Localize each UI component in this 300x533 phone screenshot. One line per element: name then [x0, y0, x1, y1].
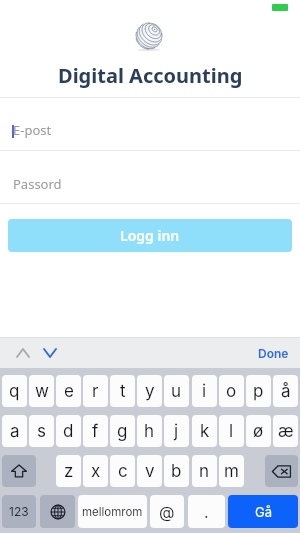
button[interactable]: . [188, 495, 225, 528]
staticText: i [202, 381, 207, 402]
staticText: E-post [13, 121, 52, 139]
staticText: m [224, 461, 239, 482]
button[interactable]: Done [253, 342, 293, 365]
button[interactable]: h [137, 415, 162, 447]
button[interactable]: ø [246, 415, 271, 447]
staticText: l [229, 421, 234, 442]
button[interactable]: u [164, 375, 189, 407]
staticText: x [91, 461, 101, 482]
staticText: t [120, 381, 126, 402]
button[interactable]: y [137, 375, 162, 407]
staticText: f [92, 421, 99, 442]
button[interactable]: q [2, 375, 27, 407]
button[interactable]: b [164, 455, 189, 487]
staticText: ø [253, 421, 264, 442]
button[interactable]: Previous field [10, 342, 36, 364]
button[interactable]: Passord [0, 151, 300, 203]
staticText: y [145, 381, 155, 402]
button[interactable]: l [219, 415, 244, 447]
staticText: @ [159, 502, 175, 521]
staticText: s [37, 421, 46, 442]
button[interactable]: z [56, 455, 81, 487]
button[interactable]: x [83, 455, 108, 487]
button[interactable]: j [164, 415, 189, 447]
staticText: æ [278, 421, 294, 442]
button[interactable]: æ [273, 415, 298, 447]
button[interactable]: e [56, 375, 81, 407]
button[interactable]: w [29, 375, 54, 407]
staticText: e [64, 381, 74, 402]
staticText: 123 [9, 504, 29, 519]
staticText: q [9, 381, 20, 402]
staticText: . [204, 502, 209, 521]
button[interactable]: @ [150, 495, 184, 528]
button[interactable]: Gå [228, 495, 298, 528]
button[interactable]: f [83, 415, 108, 447]
staticText: å [281, 381, 291, 402]
staticText: c [118, 461, 128, 482]
button[interactable]: s [29, 415, 54, 447]
button[interactable]: a [2, 415, 27, 447]
button[interactable]: r [83, 375, 108, 407]
button[interactable]: n [192, 455, 217, 487]
button[interactable]: c [110, 455, 135, 487]
staticText: r [92, 381, 99, 402]
button[interactable]: k [192, 415, 217, 447]
button[interactable]: d [56, 415, 81, 447]
button[interactable]: Switch keyboard [40, 495, 75, 528]
button[interactable]: p [246, 375, 271, 407]
button[interactable]: g [110, 415, 135, 447]
button[interactable]: m [219, 455, 244, 487]
staticText: u [171, 381, 182, 402]
staticText: k [200, 421, 210, 442]
staticText: z [64, 461, 74, 482]
button[interactable]: Next field [36, 342, 63, 364]
button[interactable]: mellomrom [78, 495, 147, 528]
staticText: g [117, 421, 128, 442]
button[interactable]: å [273, 375, 298, 407]
staticText: w [35, 381, 49, 402]
button[interactable]: Backspace [265, 455, 298, 487]
staticText: b [171, 461, 182, 482]
staticText: Done [258, 346, 289, 361]
button[interactable]: v [137, 455, 162, 487]
staticText: n [199, 461, 210, 482]
staticText: Logg inn [120, 226, 180, 245]
staticText: o [226, 381, 237, 402]
staticText: mellomrom [82, 505, 143, 519]
button[interactable]: Logg inn [8, 219, 292, 252]
staticText: a [10, 421, 20, 442]
button[interactable]: i [192, 375, 217, 407]
button[interactable]: 123 [2, 495, 36, 528]
staticText: d [63, 421, 74, 442]
staticText: v [145, 461, 155, 482]
staticText: Digital Accounting [58, 62, 243, 89]
staticText: Gå [255, 504, 272, 520]
staticText: j [174, 421, 179, 442]
staticText: p [253, 381, 264, 402]
button[interactable]: Shift [2, 455, 36, 487]
button[interactable]: E-post [0, 98, 300, 150]
button[interactable]: o [219, 375, 244, 407]
button[interactable]: t [110, 375, 135, 407]
staticText: Passord [13, 175, 62, 193]
staticText: h [144, 421, 155, 442]
